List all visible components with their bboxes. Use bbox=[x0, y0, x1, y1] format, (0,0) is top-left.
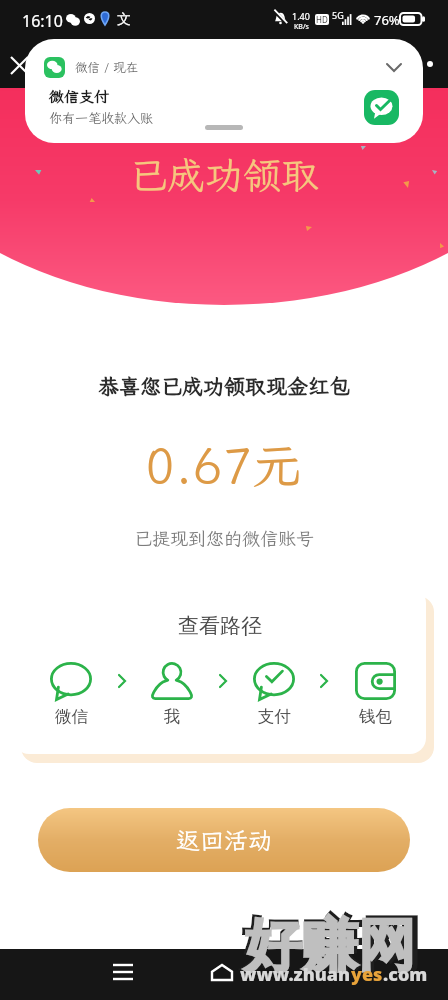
staticText: 返回活动 bbox=[176, 824, 272, 856]
staticText: www.zhuan bbox=[240, 962, 351, 987]
staticText: 你有一笔收款入账 bbox=[49, 110, 154, 127]
staticText: 1.40 bbox=[292, 10, 310, 22]
button[interactable]: 查看路径 bbox=[13, 587, 426, 754]
staticText: 5G bbox=[332, 9, 344, 21]
button[interactable]: 微信 bbox=[43, 660, 99, 727]
staticText: 已提现到您的微信账号 bbox=[134, 526, 314, 550]
staticText: 好赚网 bbox=[241, 907, 421, 983]
button[interactable]: Expand bbox=[382, 55, 406, 79]
staticText: yes bbox=[351, 962, 383, 987]
button[interactable]: 支付 bbox=[246, 660, 302, 727]
staticText: 微信 bbox=[55, 706, 88, 727]
staticText: 微信 / 现在 bbox=[75, 59, 139, 75]
button[interactable]: Recents bbox=[100, 949, 146, 995]
button[interactable]: Close bbox=[4, 50, 34, 80]
button[interactable]: Home bbox=[199, 949, 245, 995]
staticText: 76% bbox=[374, 11, 400, 29]
button[interactable]: 我 bbox=[144, 660, 200, 727]
button[interactable]: 微信 / 现在 bbox=[25, 39, 423, 143]
staticText: 16:10 bbox=[22, 10, 63, 32]
button[interactable]: 返回活动 bbox=[38, 808, 410, 872]
staticText: 我 bbox=[164, 706, 181, 727]
staticText: 查看路径 bbox=[178, 613, 262, 639]
staticText: .com bbox=[383, 962, 428, 987]
staticText: HD bbox=[316, 14, 328, 25]
staticText: 0.67元 bbox=[145, 431, 303, 495]
staticText: 微信支付 bbox=[49, 87, 110, 107]
staticText: 已成功领取 bbox=[129, 150, 320, 198]
staticText: 好赚网 bbox=[244, 910, 415, 982]
staticText: 恭喜您已成功领取现金红包 bbox=[98, 372, 350, 400]
staticText: KB/s bbox=[294, 22, 309, 32]
button[interactable]: 钱包 bbox=[347, 660, 403, 727]
staticText: 钱包 bbox=[359, 706, 392, 727]
staticText: 文 bbox=[117, 11, 131, 29]
staticText: 支付 bbox=[258, 706, 291, 727]
